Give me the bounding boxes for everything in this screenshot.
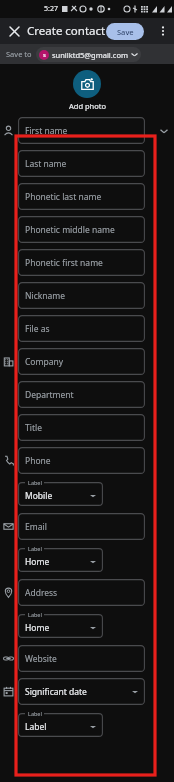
button[interactable]: First name	[18, 117, 145, 144]
button[interactable]: Phonetic first name	[18, 249, 145, 276]
staticText: Home	[25, 622, 50, 634]
button[interactable]: Expand name fields	[158, 125, 170, 137]
staticText: Nickname	[25, 290, 66, 302]
staticText: Phonetic last name	[25, 191, 102, 203]
button[interactable]: Email	[18, 513, 145, 540]
button[interactable]: Label	[18, 482, 103, 506]
staticText: Add photo	[69, 101, 106, 111]
button[interactable]: Phonetic last name	[18, 183, 145, 210]
button[interactable]: Website	[18, 645, 145, 672]
staticText: s	[43, 51, 46, 59]
staticText: Label	[28, 710, 42, 717]
button[interactable]: Address	[18, 579, 145, 606]
staticText: Mobile	[25, 490, 53, 502]
button[interactable]: Label	[18, 713, 103, 737]
staticText: Company	[25, 356, 64, 368]
staticText: Save to	[6, 49, 32, 59]
button[interactable]: Significant date	[18, 678, 145, 705]
staticText: File as	[25, 323, 50, 335]
button[interactable]: Add photo	[73, 70, 101, 98]
staticText: Label	[28, 545, 42, 552]
staticText: 5:27	[44, 4, 58, 14]
button[interactable]: Phonetic middle name	[18, 216, 145, 243]
button[interactable]: Phone	[18, 447, 145, 474]
staticText: Phonetic first name	[25, 257, 103, 269]
button[interactable]: Title	[18, 414, 145, 441]
staticText: Department	[25, 389, 74, 401]
staticText: Phone	[25, 455, 51, 467]
staticText: Address	[25, 587, 58, 599]
staticText: Phonetic middle name	[25, 224, 115, 236]
button[interactable]: More options	[154, 22, 172, 40]
button[interactable]: Label	[18, 548, 103, 572]
staticText: Save	[117, 27, 134, 37]
button[interactable]: Department	[18, 381, 145, 408]
staticText: Label	[25, 721, 47, 733]
staticText: sunilktd5@gmail.com	[52, 50, 128, 60]
staticText: Home	[25, 556, 50, 568]
staticText: Significant date	[25, 686, 87, 698]
button[interactable]: File as	[18, 315, 145, 342]
staticText: Email	[25, 521, 47, 533]
staticText: First name	[25, 125, 68, 137]
staticText: Label	[28, 611, 42, 618]
button[interactable]: Last name	[18, 150, 145, 177]
staticText: Website	[25, 653, 57, 665]
button[interactable]: Nickname	[18, 282, 145, 309]
button[interactable]: s	[39, 47, 138, 62]
staticText: Label	[28, 479, 42, 486]
button[interactable]: Label	[18, 614, 103, 638]
staticText: Last name	[25, 158, 67, 170]
button[interactable]: Save	[106, 23, 144, 40]
button[interactable]: Close	[4, 21, 24, 41]
staticText: Create contact	[27, 23, 106, 39]
staticText: Title	[25, 422, 42, 434]
button[interactable]: Company	[18, 348, 145, 375]
